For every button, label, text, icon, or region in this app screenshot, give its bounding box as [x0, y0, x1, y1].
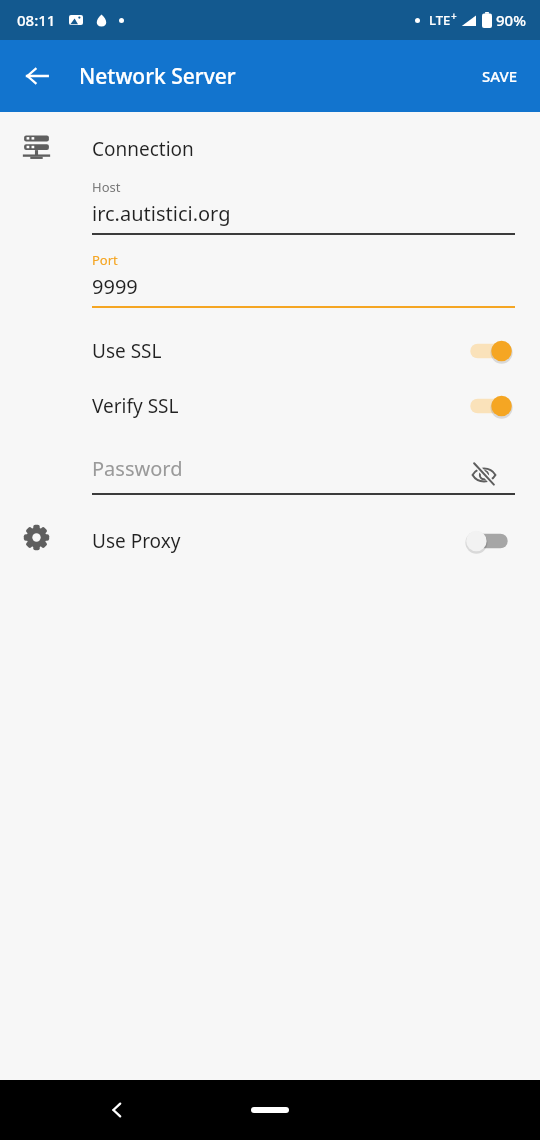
staticText: + [451, 9, 457, 23]
staticText: 9999 [92, 273, 138, 300]
staticText: Connection [92, 136, 194, 162]
button[interactable]: 9999 [92, 273, 515, 311]
button[interactable]: Verify SSL [92, 380, 515, 432]
staticText: Use SSL [92, 338, 162, 364]
button[interactable]: Home [251, 1107, 289, 1113]
button[interactable]: Use Proxy [92, 515, 515, 567]
button[interactable]: Back [93, 1086, 141, 1134]
button[interactable]: irc.autistici.org [92, 200, 515, 238]
staticText: Port [92, 251, 118, 269]
staticText: Use Proxy [92, 528, 181, 554]
staticText: SAVE [482, 66, 518, 86]
staticText: irc.autistici.org [92, 200, 231, 227]
staticText: Host [92, 178, 121, 196]
button[interactable]: Use SSL [92, 325, 515, 377]
staticText: Network Server [79, 62, 236, 91]
staticText: 08:11 [17, 10, 56, 30]
staticText: LTE [429, 11, 451, 29]
button[interactable]: Back [12, 51, 62, 101]
button[interactable]: Password [92, 455, 515, 493]
button[interactable]: Show password [466, 457, 502, 493]
staticText: Password [92, 455, 183, 482]
staticText: 90% [496, 10, 526, 30]
button[interactable]: SAVE [468, 56, 532, 96]
staticText: Verify SSL [92, 393, 179, 419]
